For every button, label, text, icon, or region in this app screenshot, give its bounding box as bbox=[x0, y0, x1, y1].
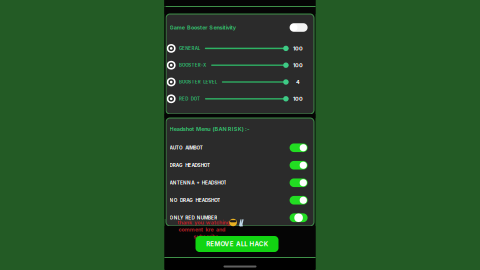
button[interactable]: Remove all hack bbox=[195, 236, 278, 252]
staticText: subscribe bbox=[193, 233, 218, 240]
staticText: Headshot Menu (BAN RISK) :- bbox=[170, 126, 250, 132]
button[interactable]: AUTO AIMBOT bbox=[170, 139, 308, 156]
staticText: 100 bbox=[293, 45, 303, 52]
staticText: ONLY RED NUMBER bbox=[170, 215, 217, 220]
staticText: REMOVE ALL HACK bbox=[206, 240, 268, 248]
staticText: DRAG HEADSHOT bbox=[170, 162, 210, 168]
staticText: comment kre and bbox=[178, 226, 225, 233]
button[interactable]: ONLY RED NUMBER bbox=[170, 209, 308, 226]
staticText: AUTO AIMBOT bbox=[170, 145, 203, 150]
staticText: BOOSTER LEVEL bbox=[179, 79, 217, 85]
staticText: Game Booster Sensitivity bbox=[170, 24, 236, 31]
button[interactable]: Game Booster Sensitivity toggle bbox=[290, 23, 308, 32]
button[interactable]: NO DRAG HEADSHOT bbox=[170, 191, 308, 209]
staticText: RED DOT bbox=[179, 96, 200, 101]
staticText: 100 bbox=[293, 95, 303, 102]
staticText: 100 bbox=[293, 62, 303, 68]
button[interactable]: ANTENNA + HEADSHOT bbox=[170, 174, 308, 191]
staticText: 4 bbox=[296, 79, 300, 85]
staticText: BOOSTER-X bbox=[179, 62, 206, 68]
staticText: thank you watching bbox=[177, 219, 229, 226]
staticText: NO DRAG HEADSHOT bbox=[170, 197, 220, 203]
staticText: ANTENNA + HEADSHOT bbox=[170, 180, 226, 185]
button[interactable]: DRAG HEADSHOT bbox=[170, 156, 308, 174]
staticText: GENERAL bbox=[179, 46, 200, 51]
